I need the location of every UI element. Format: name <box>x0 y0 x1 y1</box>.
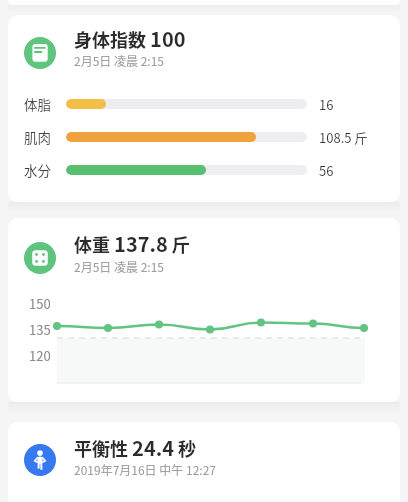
staticText: 肌肉 <box>24 127 51 147</box>
staticText: 16 <box>319 95 334 114</box>
staticText: 135 <box>29 320 51 338</box>
staticText: 身体指数 100 <box>74 24 186 53</box>
staticText: 体重 137.8 斤 <box>74 229 190 258</box>
staticText: 平衡性 24.4 秒 <box>74 433 197 462</box>
staticText: 体脂 <box>24 94 51 114</box>
staticText: 2019年7月16日 中午 12:27 <box>74 461 216 478</box>
staticText: 水分 <box>24 160 51 180</box>
button[interactable]: 平衡性 24.4 秒 <box>8 422 400 502</box>
button[interactable]: 身体指数 100 <box>8 15 400 202</box>
staticText: 2月5日 凌晨 2:15 <box>74 258 165 275</box>
staticText: 108.5 斤 <box>319 128 368 147</box>
staticText: 120 <box>29 346 51 364</box>
staticText: 150 <box>29 294 51 312</box>
staticText: 56 <box>319 161 334 180</box>
button[interactable]: 体重 137.8 斤 <box>8 218 400 402</box>
staticText: 2月5日 凌晨 2:15 <box>74 52 165 69</box>
